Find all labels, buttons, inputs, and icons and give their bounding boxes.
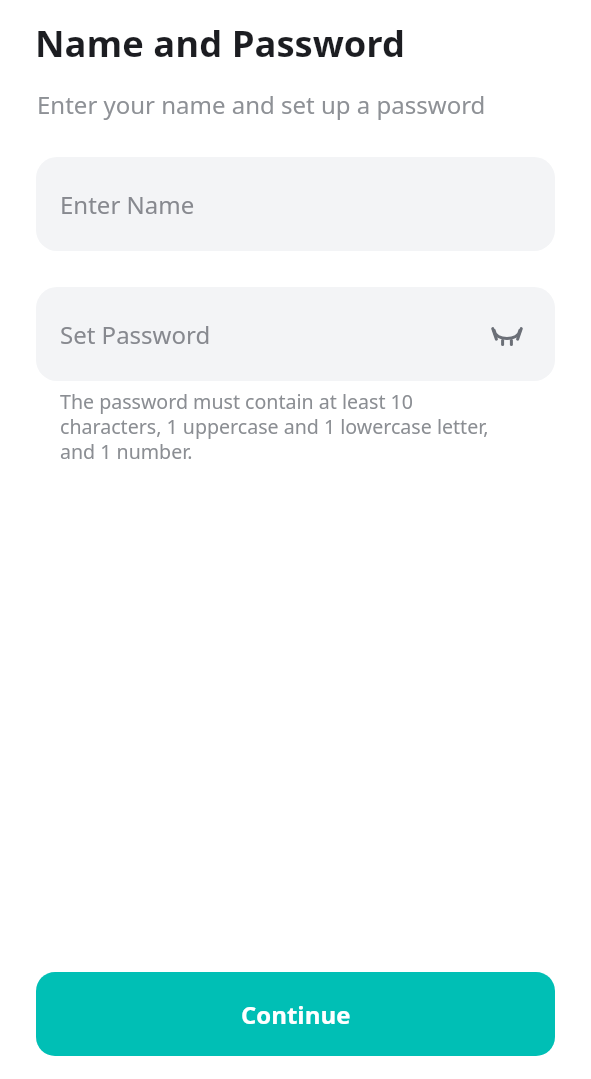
staticText: Name and Password [35, 18, 406, 68]
button[interactable]: Enter Name [36, 157, 555, 251]
button[interactable]: Set Password [36, 287, 555, 381]
button[interactable]: Show password [487, 316, 527, 356]
button[interactable]: Continue [36, 972, 555, 1056]
staticText: The password must contain at least 10 ch… [60, 388, 489, 464]
staticText: Enter Name [60, 188, 195, 221]
staticText: Enter your name and set up a password [37, 88, 486, 121]
staticText: Set Password [60, 318, 211, 351]
staticText: Continue [241, 998, 351, 1031]
